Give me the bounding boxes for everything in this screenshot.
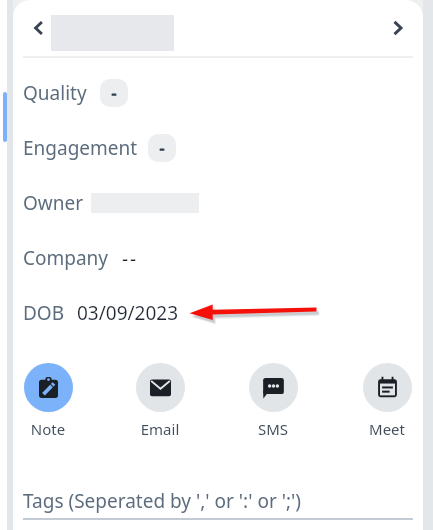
button[interactable]: Back: [24, 14, 52, 42]
button[interactable]: Rating: [148, 134, 176, 162]
staticText: 03/09/2023: [77, 300, 179, 326]
staticText: --: [122, 246, 139, 272]
staticText: Meet: [347, 419, 427, 439]
staticText: Note: [8, 419, 88, 439]
button[interactable]: Email: [136, 363, 185, 412]
button[interactable]: Meet: [363, 363, 412, 412]
staticText: Email: [120, 419, 200, 439]
staticText: DOB: [23, 300, 65, 326]
staticText: SMS: [233, 419, 313, 439]
button[interactable]: SMS: [249, 363, 298, 412]
button[interactable]: Next record: [384, 14, 412, 42]
button[interactable]: Note: [24, 363, 73, 412]
staticText: Quality: [23, 80, 87, 106]
button[interactable]: Rating: [100, 79, 128, 107]
staticText: Company: [23, 245, 109, 271]
staticText: Engagement: [23, 135, 138, 161]
staticText: Owner: [23, 190, 84, 216]
staticText: Tags (Seperated by ',' or ':' or ';'): [23, 488, 302, 514]
